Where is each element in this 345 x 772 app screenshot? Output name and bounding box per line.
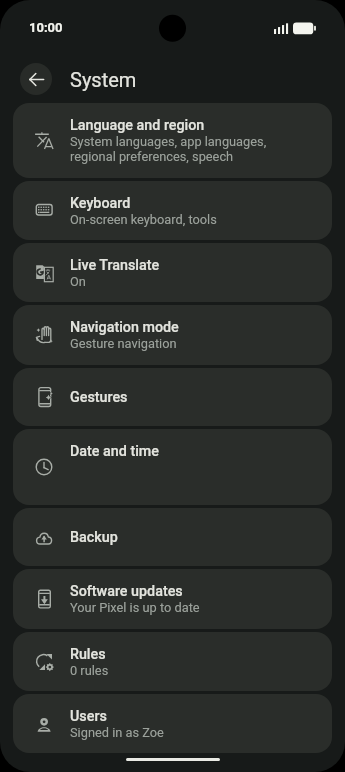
staticText: System xyxy=(70,68,137,91)
staticText: On xyxy=(70,274,86,289)
button[interactable]: Gestures xyxy=(13,368,332,426)
staticText: 0 rules xyxy=(70,663,109,678)
button[interactable]: Navigation mode xyxy=(13,305,332,365)
staticText: Gesture navigation xyxy=(70,336,177,351)
staticText: Signed in as Zoe xyxy=(70,725,164,740)
staticText: Software updates xyxy=(70,583,183,600)
button[interactable]: Date and time xyxy=(13,429,332,505)
button[interactable]: Live Translate xyxy=(13,243,332,302)
button[interactable]: Users xyxy=(13,694,332,753)
button[interactable]: Backup xyxy=(13,508,332,566)
staticText: Date and time xyxy=(70,443,159,460)
staticText: Rules xyxy=(70,646,106,663)
staticText: Backup xyxy=(70,529,118,546)
button[interactable]: Software updates xyxy=(13,569,332,629)
staticText: Keyboard xyxy=(70,195,131,212)
staticText: 10:00 xyxy=(29,20,63,35)
button[interactable]: Rules xyxy=(13,632,332,691)
button[interactable]: Back xyxy=(20,63,52,95)
staticText: On-screen keyboard, tools xyxy=(70,212,217,227)
staticText: Navigation mode xyxy=(70,319,179,336)
staticText: Users xyxy=(70,708,107,725)
staticText: Language and region xyxy=(70,117,205,134)
button[interactable]: Keyboard xyxy=(13,181,332,240)
staticText: Gestures xyxy=(70,389,128,406)
staticText: Your Pixel is up to date xyxy=(70,600,200,615)
staticText: System languages, app languages, regiona… xyxy=(70,134,267,164)
staticText: Live Translate xyxy=(70,257,160,274)
button[interactable]: Language and region xyxy=(13,103,332,178)
